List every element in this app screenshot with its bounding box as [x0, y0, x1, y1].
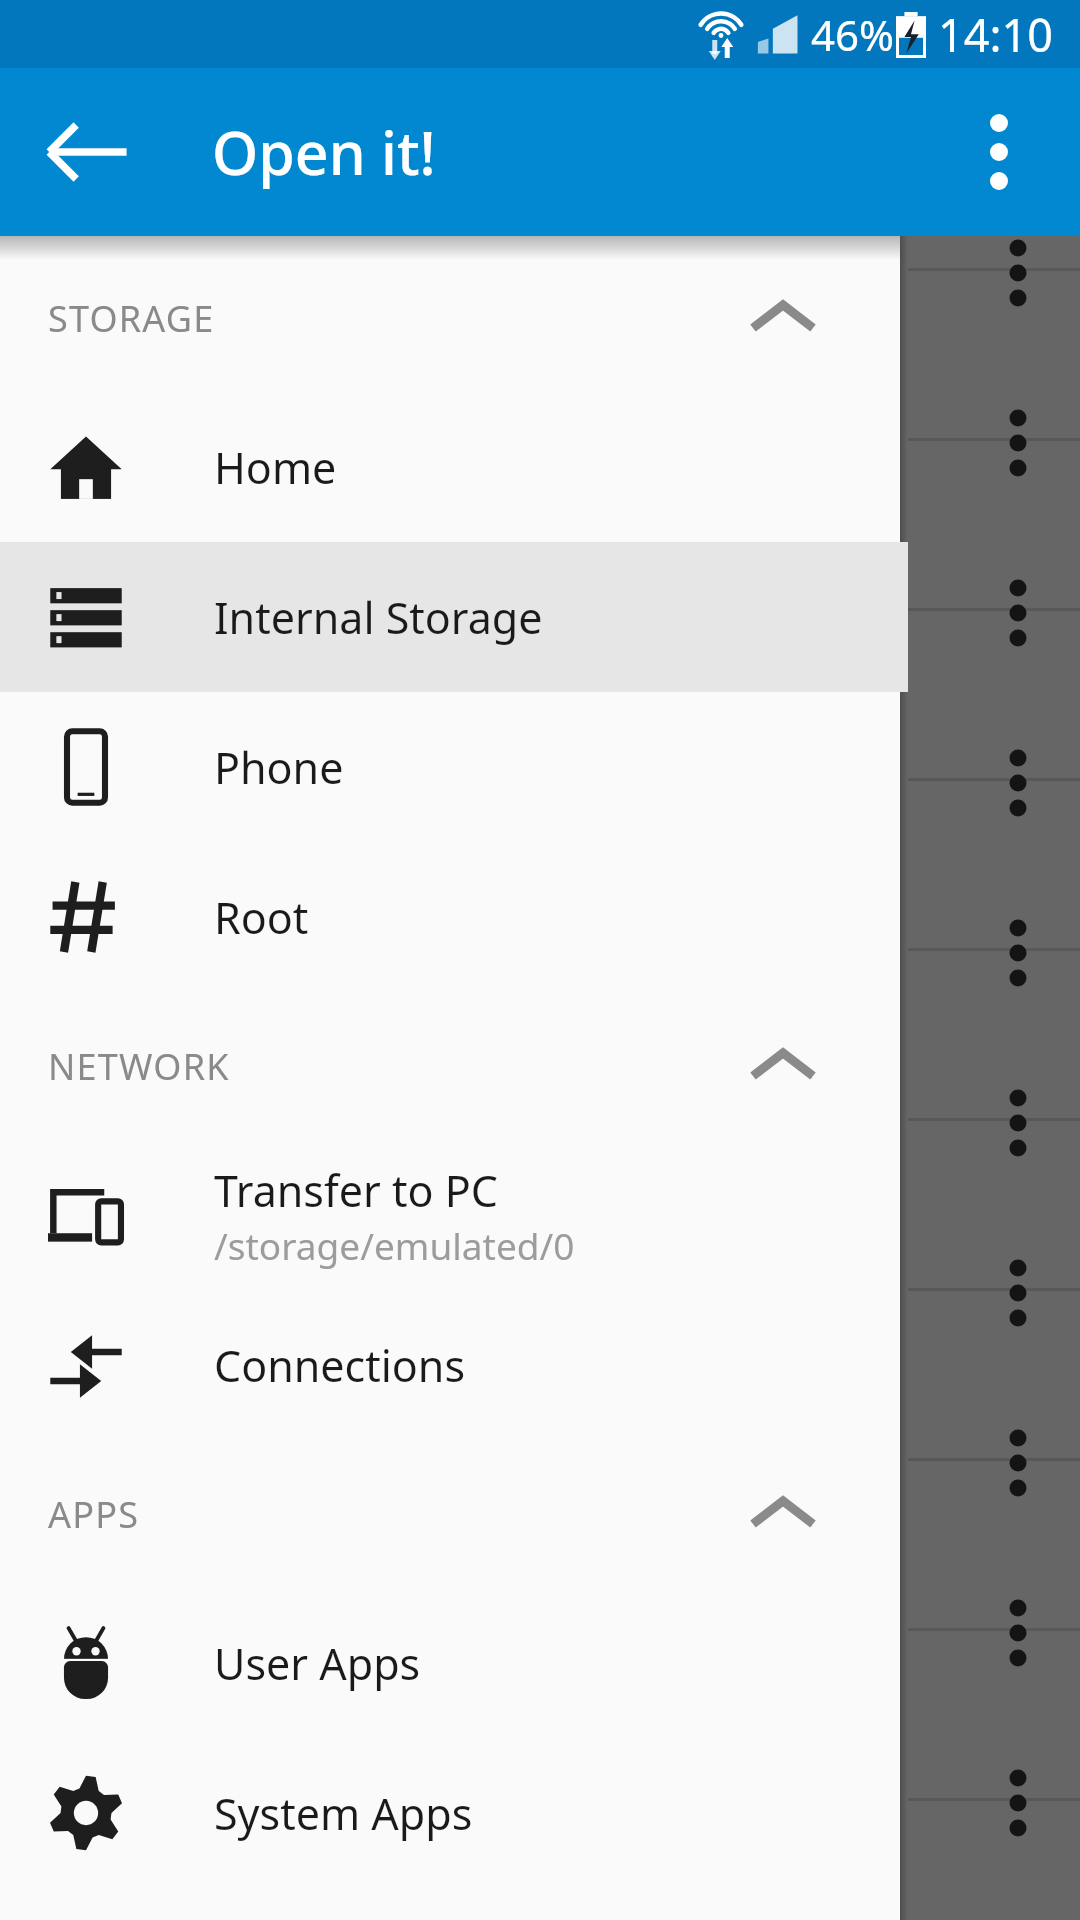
staticText: Open it! — [212, 112, 436, 192]
staticText: User Apps — [214, 1634, 421, 1693]
staticText: APPS — [48, 1490, 140, 1539]
button[interactable]: Internal Storage — [0, 542, 908, 692]
staticText: System Apps — [214, 1784, 473, 1843]
button[interactable]: Connections — [0, 1290, 908, 1440]
other: Collapse APPS — [748, 1479, 818, 1549]
button[interactable]: STORAGE — [0, 244, 908, 392]
staticText: 46% — [811, 6, 894, 63]
button[interactable]: More options — [954, 107, 1044, 197]
button[interactable]: Processes — [0, 1888, 908, 1920]
button[interactable]: Home — [0, 392, 908, 542]
other: Collapse STORAGE — [748, 283, 818, 353]
staticText: STORAGE — [48, 294, 215, 343]
staticText: Home — [214, 438, 337, 497]
staticText: /storage/emulated/0 — [214, 1220, 575, 1270]
button[interactable]: Root — [0, 842, 908, 992]
other: Collapse NETWORK — [748, 1031, 818, 1101]
button[interactable]: Phone — [0, 692, 908, 842]
button[interactable]: System Apps — [0, 1738, 908, 1888]
staticText: Internal Storage — [214, 588, 543, 647]
staticText: Transfer to PC — [214, 1161, 498, 1220]
staticText: 14:10 — [938, 4, 1054, 65]
button[interactable]: Transfer to PC — [0, 1140, 908, 1290]
button[interactable]: User Apps — [0, 1588, 908, 1738]
button[interactable]: APPS — [0, 1440, 908, 1588]
button[interactable]: Back — [42, 107, 132, 197]
staticText: Connections — [214, 1336, 466, 1395]
staticText: NETWORK — [48, 1042, 230, 1091]
staticText: Phone — [214, 738, 344, 797]
button[interactable]: NETWORK — [0, 992, 908, 1140]
staticText: Root — [214, 888, 309, 947]
